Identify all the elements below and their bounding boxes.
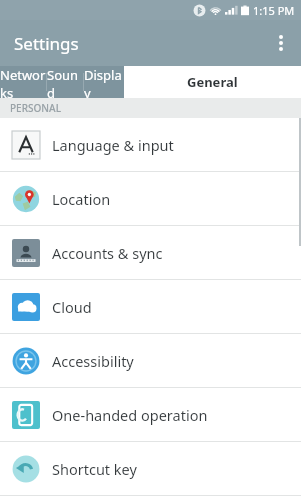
staticText: Cloud — [52, 297, 92, 317]
staticText: Shortcut key — [52, 459, 137, 479]
other: Cloud — [12, 293, 40, 321]
staticText: Networks — [0, 66, 46, 98]
button[interactable]: Language and input — [0, 118, 301, 171]
other: Location — [12, 185, 40, 213]
button[interactable]: Cloud — [0, 280, 301, 333]
staticText: One-handed operation — [52, 405, 208, 425]
button[interactable]: Sound — [47, 66, 83, 98]
staticText: Settings — [14, 32, 79, 55]
staticText: PERSONAL — [10, 101, 61, 115]
other: Language and input — [12, 131, 40, 159]
button[interactable]: One-handed operation — [0, 388, 301, 441]
button[interactable]: Shortcut key — [0, 442, 301, 495]
other: Accessibility — [12, 347, 40, 375]
button[interactable]: Accounts and sync — [0, 226, 301, 279]
button[interactable]: Networks — [0, 66, 46, 98]
staticText: Accessibility — [52, 351, 134, 371]
staticText: 1:15 PM — [253, 3, 295, 18]
other: Accounts and sync — [12, 239, 40, 267]
staticText: Sound — [47, 66, 83, 98]
button[interactable]: Display — [84, 66, 124, 98]
button[interactable]: Accessibility — [0, 334, 301, 387]
other: Shortcut key — [12, 455, 40, 483]
staticText: Display — [84, 66, 124, 98]
staticText: Location — [52, 189, 111, 209]
button[interactable]: More options — [261, 23, 301, 63]
staticText: Language & input — [52, 135, 174, 155]
staticText: Accounts & sync — [52, 243, 163, 263]
button[interactable]: General — [124, 66, 301, 98]
button[interactable]: Location — [0, 172, 301, 225]
other: One-handed operation — [12, 401, 40, 429]
staticText: General — [187, 73, 238, 91]
